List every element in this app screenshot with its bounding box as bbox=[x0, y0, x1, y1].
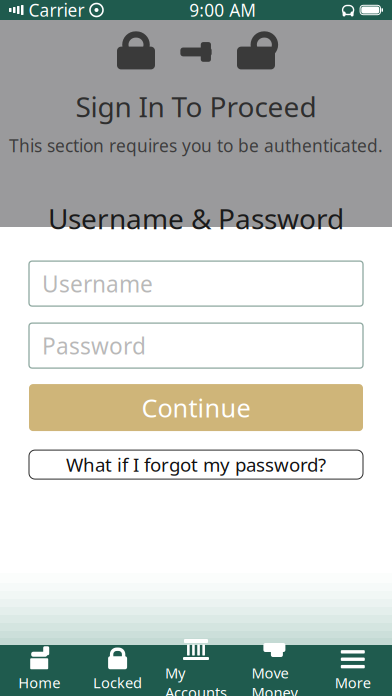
staticText: What if I forgot my password? bbox=[66, 452, 326, 477]
staticText: Locked bbox=[93, 673, 142, 692]
staticText: Move Money bbox=[251, 663, 297, 696]
staticText: This section requires you to be authenti… bbox=[9, 134, 383, 157]
button[interactable]: More bbox=[314, 645, 392, 696]
button[interactable]: Locked bbox=[78, 645, 157, 696]
staticText: Username bbox=[42, 268, 153, 299]
staticText: Home bbox=[18, 673, 60, 692]
staticText: My Accounts bbox=[165, 663, 227, 696]
button[interactable]: Password bbox=[29, 323, 363, 368]
staticText: 9:00 AM bbox=[189, 0, 256, 21]
staticText: More bbox=[335, 673, 371, 692]
staticText: Carrier bbox=[28, 0, 84, 21]
staticText: Sign In To Proceed bbox=[75, 88, 316, 125]
staticText: Username & Password bbox=[48, 200, 344, 237]
button[interactable]: My Accounts bbox=[157, 645, 235, 696]
button[interactable]: Home bbox=[0, 645, 78, 696]
button[interactable]: What if I forgot my password? bbox=[29, 450, 363, 479]
staticText: Continue bbox=[141, 391, 250, 424]
button[interactable]: Move Money bbox=[235, 645, 314, 696]
button[interactable]: Continue bbox=[29, 384, 363, 431]
button[interactable]: Username bbox=[29, 261, 363, 306]
staticText: Password bbox=[42, 330, 146, 361]
